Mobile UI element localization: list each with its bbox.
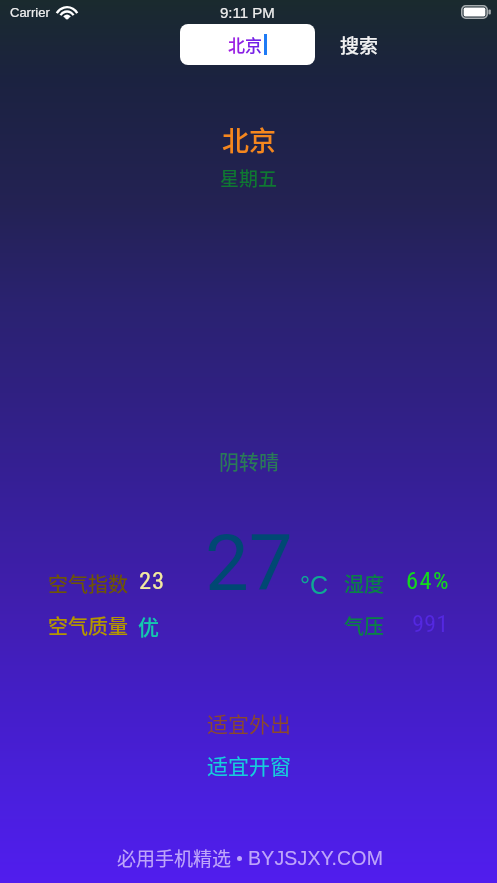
staticText: 阴转晴: [219, 447, 279, 476]
staticText: 优: [138, 611, 159, 641]
staticText: 991: [412, 609, 449, 638]
staticText: 必用手机精选: [117, 844, 232, 872]
staticText: 星期五: [220, 164, 278, 192]
staticText: 64%: [406, 566, 450, 595]
button[interactable]: 搜索: [336, 24, 383, 65]
staticText: 湿度: [344, 569, 384, 598]
staticText: 空气质量: [48, 611, 128, 640]
staticText: 空气指数: [48, 569, 128, 598]
staticText: 搜索: [340, 31, 379, 59]
staticText: 27: [205, 518, 293, 609]
staticText: Carrier: [10, 5, 50, 20]
staticText: 9:11 PM: [220, 4, 275, 21]
other: Battery full: [461, 5, 491, 19]
staticText: 23: [139, 566, 165, 595]
staticText: 北京: [228, 32, 262, 57]
other: Wi-Fi signal: [57, 6, 77, 20]
staticText: °C: [300, 571, 329, 599]
staticText: 适宜外出: [207, 708, 291, 738]
staticText: 北京: [222, 120, 276, 159]
button[interactable]: 必用手机精选: [115, 844, 386, 872]
button[interactable]: 北京: [180, 24, 315, 65]
staticText: 气压: [344, 611, 384, 640]
staticText: BYJSJXY.COM: [248, 847, 384, 869]
staticText: 适宜开窗: [207, 750, 291, 780]
